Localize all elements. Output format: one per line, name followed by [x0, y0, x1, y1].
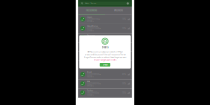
staticText: 10%	[122, 18, 126, 20]
button[interactable]: FREE SERVERS	[78, 7, 105, 15]
button[interactable]: Okey	[100, 63, 110, 67]
staticText: Turkey	[87, 90, 93, 92]
button[interactable]: https://vpnget.app/credits	[93, 59, 116, 61]
button[interactable]: VIP SERVERS	[105, 7, 132, 15]
staticText: 61%	[122, 73, 126, 75]
staticText: 0.17 GB/s	[87, 20, 94, 22]
staticText: All VPN accounts are always provided for…	[87, 51, 123, 53]
staticText: Brazil	[87, 71, 91, 73]
staticText: https://vpnget.app/credits	[93, 59, 116, 61]
button[interactable]: Select Server	[80, 2, 130, 5]
staticText: Canada	[87, 53, 93, 55]
staticText: FREE SERVERS	[86, 10, 97, 12]
staticText: 51.195.41.142 · 68 ms	[87, 27, 101, 29]
staticText: Japan	[87, 16, 92, 18]
button[interactable]: Singapore	[78, 42, 132, 52]
staticText: Germany	[87, 34, 95, 36]
staticText: Okey	[102, 64, 107, 66]
button[interactable]: India	[78, 79, 132, 88]
staticText: Credits	[101, 46, 108, 49]
button[interactable]: Japan	[78, 15, 132, 24]
staticText: 14%	[122, 27, 126, 29]
staticText: Dragon. You can read more about this in …	[83, 56, 126, 58]
staticText: 66.70.180.50 · 77 ms	[87, 55, 100, 57]
button[interactable]: Canada	[78, 52, 132, 61]
staticText: C	[104, 39, 106, 43]
button[interactable]: Turkey	[78, 88, 132, 98]
button[interactable]: United States	[78, 24, 132, 33]
button[interactable]: Germany	[78, 33, 132, 42]
staticText: 1.18 GB/s	[87, 57, 94, 59]
button[interactable]: Brazil	[78, 70, 132, 79]
staticText: VIP SERVERS	[114, 10, 123, 12]
staticText: project and it because of the top free s…	[84, 54, 125, 56]
staticText: Select Server	[84, 2, 96, 5]
staticText: 47%	[122, 55, 126, 57]
button[interactable]: France	[78, 61, 132, 70]
staticText: United States	[87, 25, 98, 27]
staticText: India	[87, 80, 90, 82]
